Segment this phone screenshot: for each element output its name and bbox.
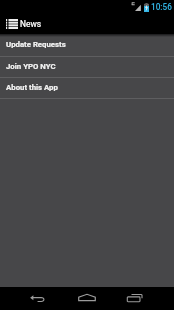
button[interactable]: Back — [20, 287, 54, 310]
button[interactable]: Join YPO NYC — [0, 57, 174, 77]
staticText: 10:56 — [151, 2, 172, 12]
button[interactable]: Home — [70, 286, 104, 309]
staticText: Update Requests — [6, 40, 66, 49]
button[interactable]: Update Requests — [0, 34, 174, 56]
button[interactable]: News — [0, 17, 50, 31]
button[interactable]: Recent apps — [117, 286, 151, 309]
staticText: News — [20, 19, 42, 29]
staticText: Join YPO NYC — [6, 62, 56, 71]
staticText: About this App — [6, 83, 58, 92]
button[interactable]: About this App — [0, 78, 174, 98]
